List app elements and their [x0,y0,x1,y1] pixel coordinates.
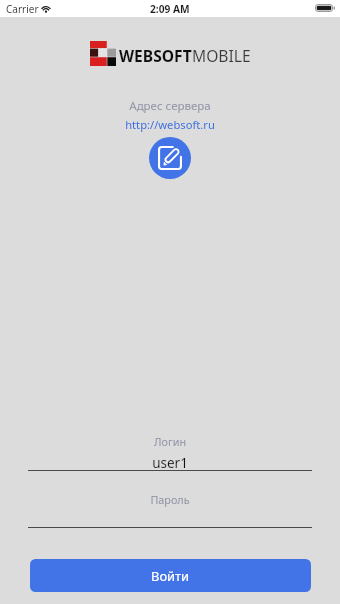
staticText: Carrier [6,2,39,16]
staticText: WEBSOFT [119,45,192,66]
staticText: Адрес сервера [0,98,340,114]
button[interactable]: Войти [30,559,311,592]
button[interactable]: Edit server address [149,137,191,179]
staticText: Пароль [0,492,340,507]
staticText: http://websoft.ru [0,117,340,132]
staticText: Логин [0,434,340,449]
staticText: 2:09 AM [150,2,190,16]
staticText: user1 [0,454,340,472]
staticText: Войти [151,567,190,585]
staticText: MOBILE [192,45,251,66]
